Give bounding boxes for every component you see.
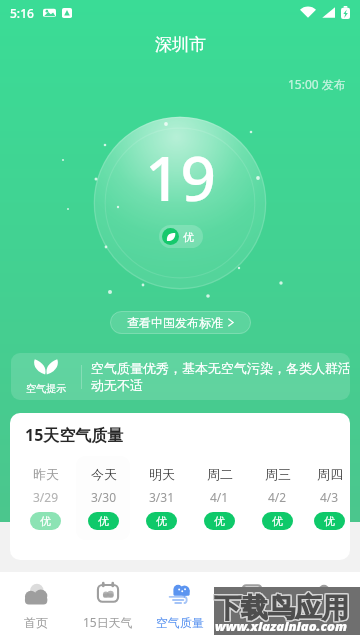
staticText: 优 [40,514,51,528]
staticText: 周三 [265,466,291,482]
staticText: 4/1 [210,489,229,505]
staticText: 昨天 [33,466,59,482]
button[interactable]: 昨天 [18,456,72,540]
button[interactable]: 今天 [76,456,130,540]
staticText: 我的 [312,615,336,630]
staticText: 深圳市 [155,34,206,55]
staticText: 3/31 [149,489,175,505]
staticText: 15:00 发布 [288,76,346,92]
staticText: 15天空气质量 [25,424,124,446]
button[interactable]: 查看中国发布标准 [110,311,251,334]
staticText: 明天 [149,466,175,482]
button[interactable]: 15日天气 [72,572,144,639]
button[interactable]: 周四 [302,456,350,540]
staticText: 空气提示 [26,382,66,395]
staticText: 优 [98,514,109,528]
staticText: 下载鸟应用 [213,590,348,624]
staticText: 下载鸟应用 [215,591,350,625]
staticText: 下载鸟应用 [215,592,350,626]
staticText: 下载鸟应用 [213,591,348,625]
staticText: 3/30 [91,489,117,505]
staticText: 查看中国发布标准 [127,315,223,330]
button[interactable]: 首页 [0,572,72,639]
staticText: 19 [145,135,216,219]
button[interactable]: 空气提示 [11,353,350,400]
staticText: 3/29 [33,489,59,505]
button[interactable]: 周二 [192,456,246,540]
button[interactable]: 周三 [250,456,304,540]
staticText: 下载鸟应用 [213,592,348,626]
staticText: 今天 [91,466,117,482]
staticText: 周四 [317,466,343,482]
staticText: 下载鸟应用 [214,590,349,624]
staticText: 优 [324,514,335,528]
staticText: 下载鸟应用 [214,591,349,625]
staticText: 生活 [240,615,264,630]
staticText: 周二 [207,466,233,482]
staticText: 空气质量 [156,615,204,630]
staticText: 优 [156,514,167,528]
staticText: 空气质量优秀，基本无空气污染，各类人群活动无不适 [91,360,350,394]
button[interactable]: 我的 [288,572,360,639]
button[interactable]: 生活 [216,572,288,639]
staticText: 4/3 [320,489,339,505]
staticText: 15日天气 [83,614,133,630]
staticText: 优 [183,230,194,244]
staticText: 首页 [24,615,48,630]
button[interactable]: 明天 [134,456,188,540]
button[interactable]: 空气质量 [144,572,216,639]
staticText: 4/2 [268,489,287,505]
staticText: 优 [214,514,225,528]
staticText: 下载鸟应用 [214,592,349,626]
staticText: www.xlazalnlao.com [215,617,348,635]
staticText: 5:16 [10,5,34,21]
staticText: 优 [272,514,283,528]
staticText: 下载鸟应用 [215,590,350,624]
